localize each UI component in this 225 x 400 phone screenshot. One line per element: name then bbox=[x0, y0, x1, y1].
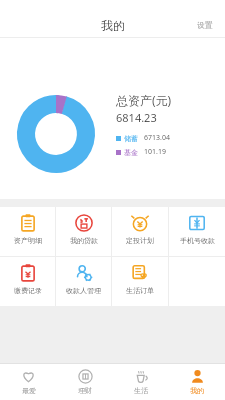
staticText: 收款人管理 bbox=[66, 286, 101, 295]
button[interactable]: 缴费记录 bbox=[0, 257, 55, 306]
button[interactable]: 我的贷款 bbox=[56, 207, 111, 256]
button[interactable]: 我的 bbox=[169, 364, 225, 400]
button[interactable]: 定投计划 bbox=[112, 207, 168, 256]
staticText: 最爱 bbox=[22, 386, 36, 395]
staticText: 资产明细 bbox=[14, 236, 42, 245]
staticText: 缴费记录 bbox=[14, 286, 42, 295]
button[interactable]: 设置 bbox=[185, 16, 225, 34]
staticText: 6713.04 bbox=[144, 133, 170, 143]
staticText: 生活订单 bbox=[126, 286, 154, 295]
staticText: 基金 bbox=[124, 148, 138, 157]
staticText: 我的贷款 bbox=[70, 236, 98, 245]
other: 生活 bbox=[134, 369, 149, 384]
button[interactable]: 理财 bbox=[57, 364, 113, 400]
button[interactable]: 生活订单 bbox=[112, 257, 168, 306]
staticText: 6814.23 bbox=[116, 110, 157, 125]
other: 最爱 bbox=[21, 369, 36, 384]
staticText: 储蓄 bbox=[124, 134, 138, 143]
staticText: 生活 bbox=[134, 386, 148, 395]
button[interactable]: 手机号收款 bbox=[169, 207, 225, 256]
staticText: 手机号收款 bbox=[180, 236, 215, 245]
staticText: 总资产(元) bbox=[116, 92, 172, 108]
button[interactable]: 生活 bbox=[113, 364, 169, 400]
staticText: 设置 bbox=[197, 20, 213, 30]
other: 理财 bbox=[78, 369, 93, 384]
other: 我的 bbox=[190, 369, 205, 384]
button[interactable]: 最爱 bbox=[0, 364, 57, 400]
staticText: 理财 bbox=[78, 386, 92, 395]
staticText: 101.19 bbox=[144, 147, 166, 157]
button[interactable]: 资产明细 bbox=[0, 207, 55, 256]
staticText: 我的 bbox=[101, 18, 125, 33]
staticText: 我的 bbox=[190, 386, 204, 395]
button[interactable]: 收款人管理 bbox=[56, 257, 111, 306]
staticText: 定投计划 bbox=[126, 236, 154, 245]
